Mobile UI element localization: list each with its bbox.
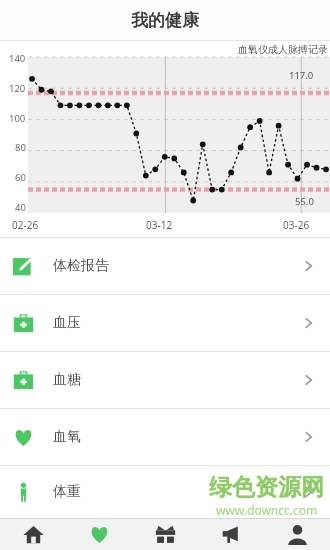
staticText: 体检报告 xyxy=(53,257,109,275)
staticText: 03-26 xyxy=(283,218,310,232)
staticText: 120 xyxy=(9,82,26,95)
staticText: 40 xyxy=(15,201,26,214)
staticText: 55.0 xyxy=(295,195,314,208)
staticText: 117.0 xyxy=(289,69,314,82)
staticText: www.downcc.com xyxy=(216,502,318,518)
staticText: 我的健康 xyxy=(131,10,199,31)
button[interactable]: 血氧 xyxy=(0,409,330,465)
staticText: 140 xyxy=(9,52,26,65)
button[interactable]: 血压 xyxy=(0,295,330,351)
button[interactable]: 体检报告 xyxy=(0,238,330,294)
button[interactable]: 体重 xyxy=(0,466,330,518)
staticText: 血氧仪成人脉搏记录 xyxy=(238,43,328,56)
staticText: 血压 xyxy=(53,314,81,332)
staticText: 60 xyxy=(15,171,26,184)
staticText: 绿色资源网 xyxy=(209,473,324,502)
staticText: 02-26 xyxy=(12,218,39,232)
staticText: 03-12 xyxy=(146,218,173,232)
staticText: 80 xyxy=(15,141,26,154)
staticText: 体重 xyxy=(53,483,81,501)
button[interactable]: Health xyxy=(66,519,132,550)
button[interactable]: Gifts xyxy=(132,519,198,550)
button[interactable]: 血糖 xyxy=(0,352,330,408)
staticText: 血氧 xyxy=(53,428,81,446)
button[interactable]: Announcements xyxy=(198,519,264,550)
staticText: 血糖 xyxy=(53,371,81,389)
button[interactable]: Home xyxy=(0,519,66,550)
staticText: 100 xyxy=(9,112,26,125)
button[interactable]: Profile xyxy=(264,519,330,550)
